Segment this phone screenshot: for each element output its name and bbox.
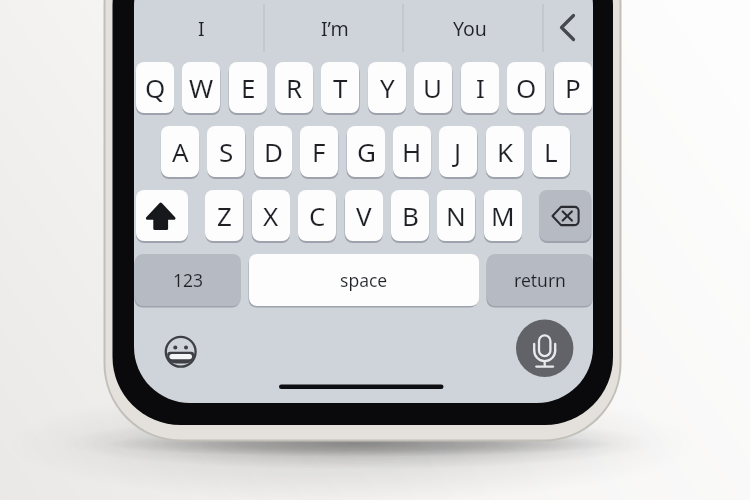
staticText: S [219,134,234,169]
button[interactable]: A [161,126,199,177]
staticText: L [544,134,558,169]
staticText: E [241,70,256,105]
staticText: Z [217,198,232,233]
button[interactable]: H [393,126,431,177]
staticText: I [198,15,205,42]
staticText: I [476,70,485,105]
button[interactable]: T [321,62,359,113]
button[interactable]: 123 [135,254,241,306]
button[interactable]: D [254,126,292,177]
staticText: D [264,134,283,169]
button[interactable]: J [439,126,477,177]
staticText: Q [145,70,166,105]
staticText: K [497,134,514,169]
button[interactable]: X [252,190,290,241]
staticText: V [356,198,372,233]
staticText: C [309,198,326,233]
button[interactable]: I [134,0,268,56]
staticText: T [333,70,348,105]
button[interactable]: E [229,62,267,113]
button[interactable]: P [554,62,592,113]
staticText: G [357,134,376,169]
staticText: I’m [321,15,349,42]
staticText: 123 [173,268,204,292]
button[interactable] [158,329,204,375]
button[interactable]: W [182,62,220,113]
staticText: N [446,198,466,233]
button[interactable]: Z [205,190,243,241]
staticText: W [189,70,214,105]
button[interactable]: return [487,254,593,306]
staticText: Y [380,70,395,105]
staticText: space [340,268,388,292]
staticText: You [453,15,487,42]
staticText: J [454,134,462,169]
button[interactable]: M [484,190,522,241]
button[interactable]: C [298,190,336,241]
staticText: H [402,134,422,169]
staticText: F [312,134,326,169]
staticText: B [402,198,419,233]
staticText: M [491,198,515,233]
button[interactable]: You [403,0,537,56]
staticText: P [565,70,581,105]
button[interactable] [136,190,188,241]
button[interactable]: U [414,62,452,113]
button[interactable] [539,190,591,241]
staticText: A [172,134,189,169]
button[interactable]: O [507,62,545,113]
button[interactable]: V [345,190,383,241]
button[interactable]: N [437,190,475,241]
button[interactable]: S [207,126,245,177]
button[interactable]: B [391,190,429,241]
button[interactable]: R [275,62,313,113]
staticText: U [423,70,443,105]
staticText: R [286,70,303,105]
button[interactable]: I [461,62,499,113]
staticText: X [263,198,279,233]
button[interactable]: Q [136,62,174,113]
button[interactable]: I’m [268,0,402,56]
button[interactable]: space [249,254,479,306]
staticText: O [516,70,537,105]
button[interactable]: G [347,126,385,177]
button[interactable]: F [300,126,338,177]
button[interactable]: K [486,126,524,177]
button[interactable]: Y [368,62,406,113]
button[interactable] [516,319,574,377]
staticText: return [514,268,566,292]
button[interactable] [537,0,593,56]
button[interactable]: L [532,126,570,177]
